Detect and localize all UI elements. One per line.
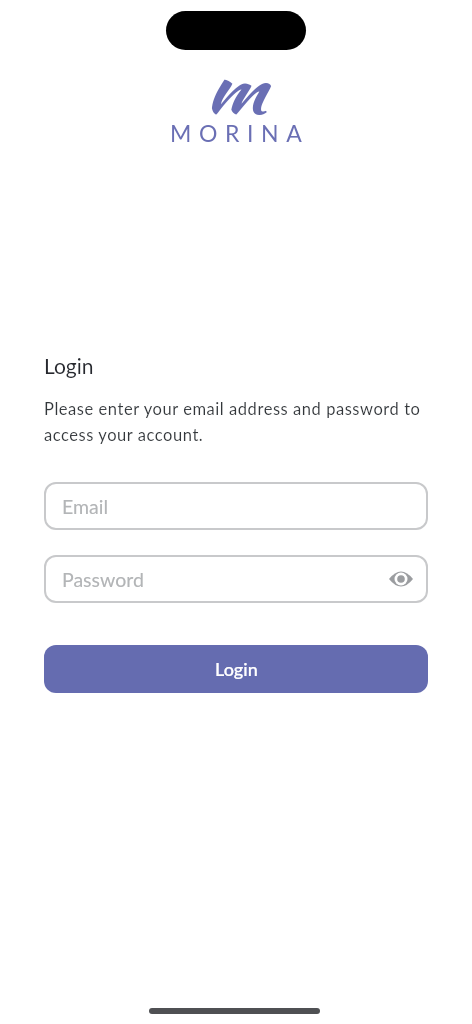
button[interactable]: Email [44, 482, 428, 530]
staticText: Please enter your email address and pass… [44, 399, 421, 444]
button[interactable]: Login [44, 645, 428, 693]
staticText: MORINA [170, 119, 310, 147]
staticText: Login [44, 353, 94, 378]
staticText: Password [62, 568, 144, 591]
staticText: Email [62, 495, 108, 518]
button[interactable]: Password [44, 555, 428, 603]
staticText: m [205, 37, 267, 139]
staticText: Login [215, 658, 258, 680]
